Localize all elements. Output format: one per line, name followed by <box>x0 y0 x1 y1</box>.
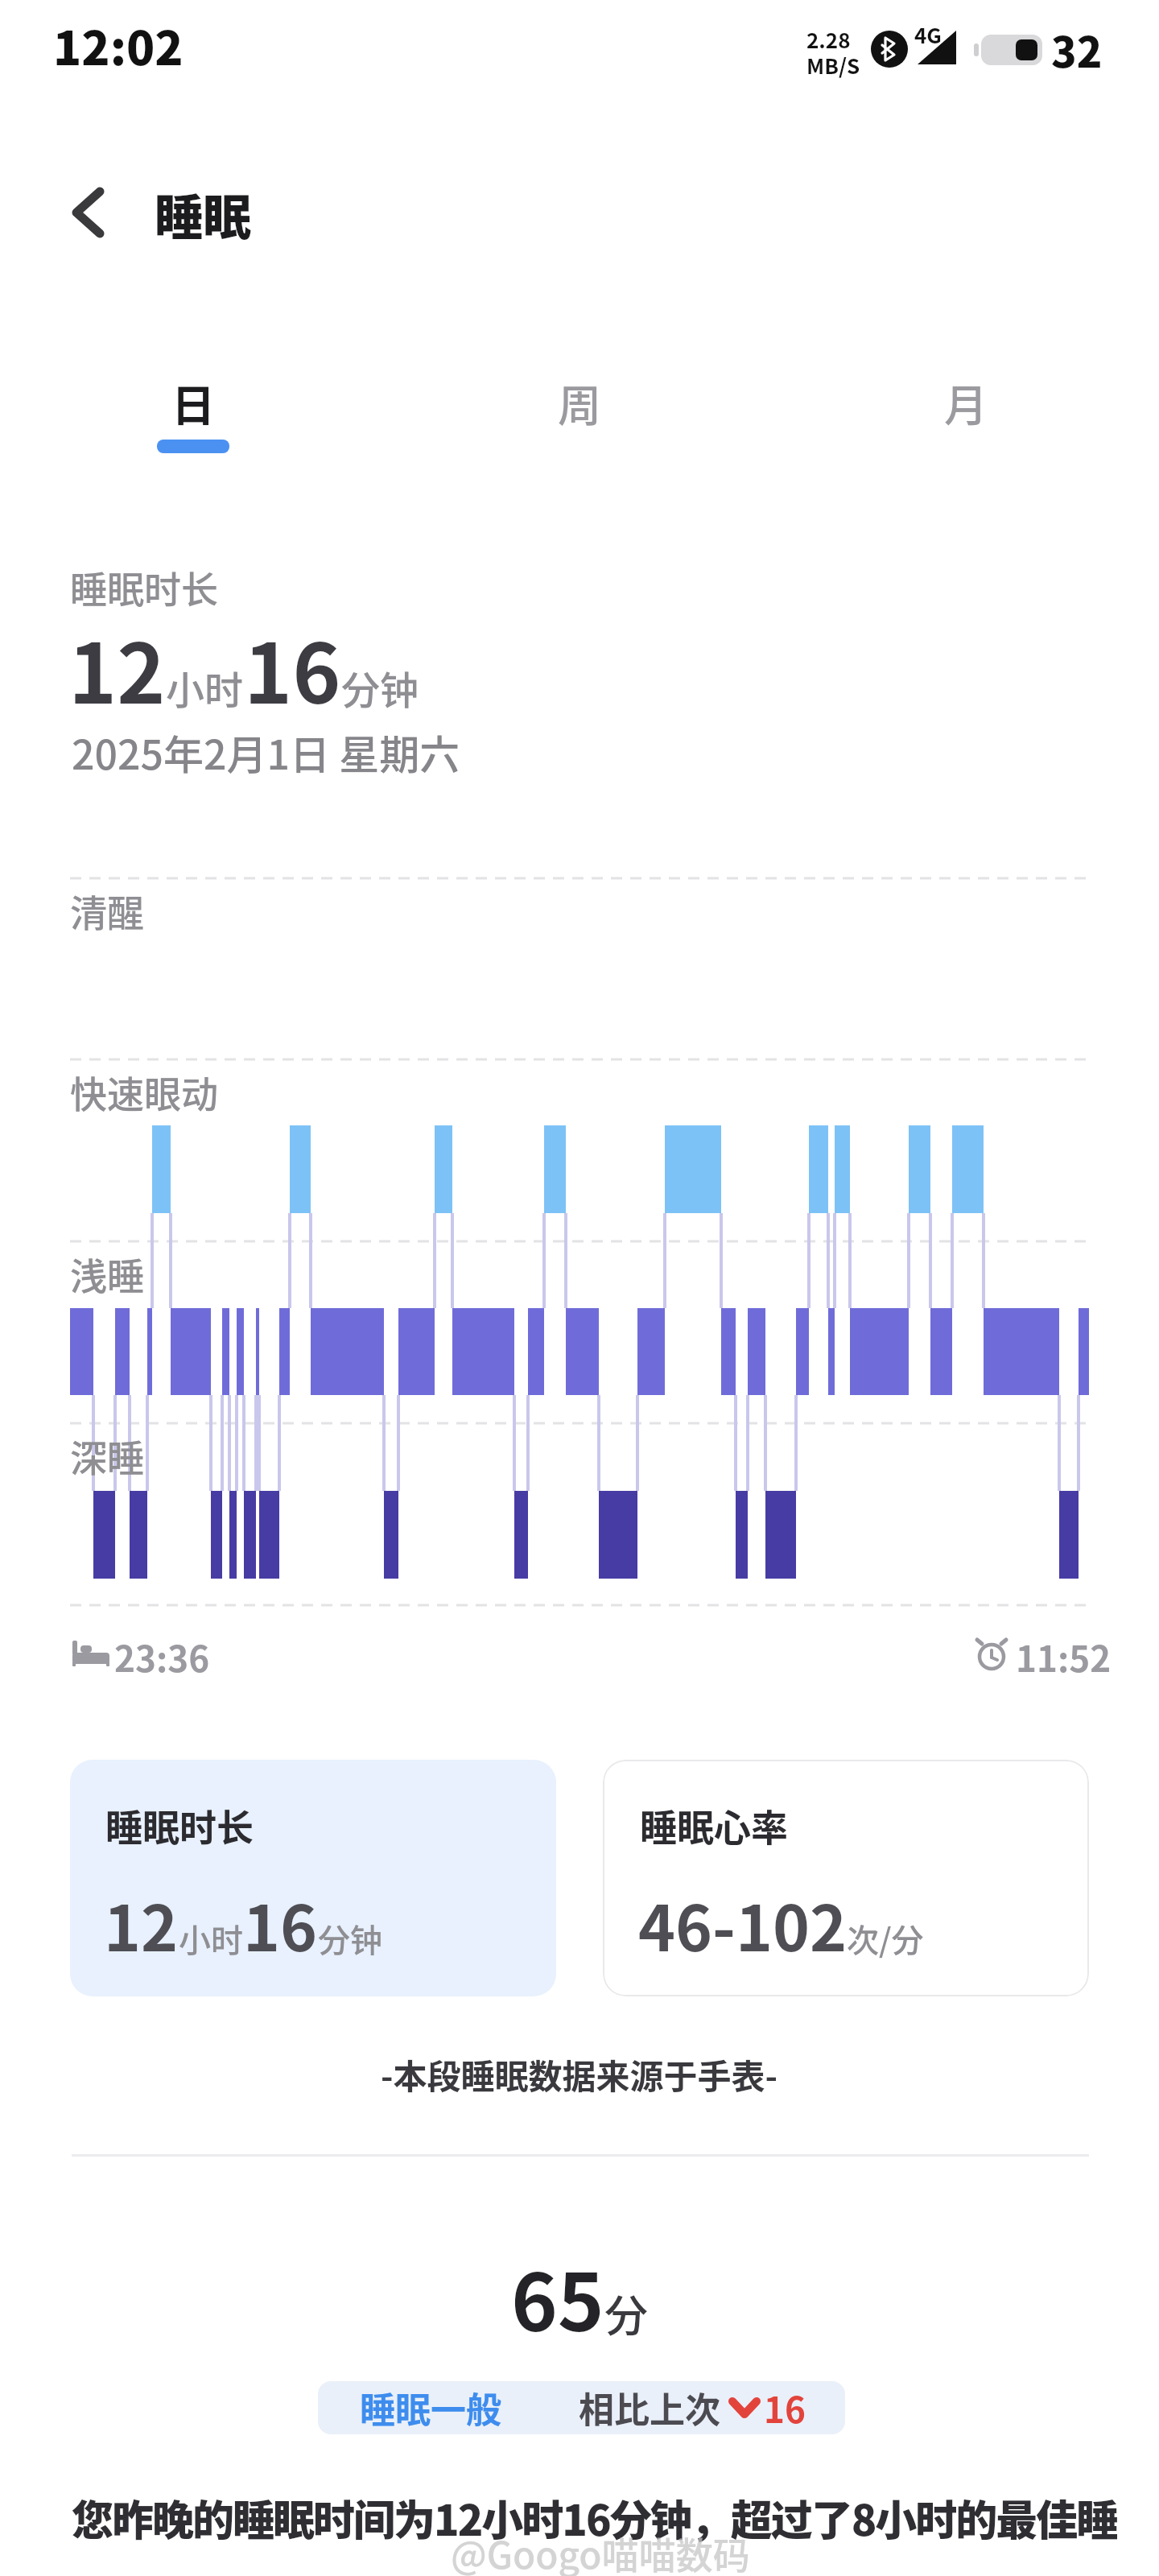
staticText: 周 <box>558 371 601 434</box>
staticText: 小时 <box>179 1915 243 1962</box>
staticText: 快速眼动 <box>70 1065 218 1119</box>
staticText: 睡眠时长 <box>70 560 218 614</box>
staticText: 睡眠时长 <box>105 1798 254 1852</box>
staticText: 16 <box>243 1879 318 1970</box>
staticText: -本段睡眠数据来源于手表- <box>381 2050 778 2099</box>
staticText: 日 <box>171 371 215 434</box>
staticText: 分钟 <box>341 659 419 716</box>
button[interactable]: 睡眠时长 <box>70 1760 556 1996</box>
staticText: 4G <box>914 19 942 50</box>
staticText: 16 <box>244 609 341 728</box>
staticText: 12 <box>68 609 166 728</box>
staticText: 分 <box>604 2281 648 2344</box>
staticText: 次/分 <box>847 1915 924 1962</box>
staticText: 睡眠心率 <box>640 1798 788 1852</box>
staticText: 2.28 <box>806 24 851 55</box>
staticText: 睡眠一般 <box>360 2382 501 2434</box>
staticText: 浅睡 <box>70 1247 144 1301</box>
staticText: MB/S <box>806 50 860 80</box>
staticText: 16 <box>764 2382 806 2434</box>
staticText: 睡眠 <box>155 179 251 249</box>
staticText: 12 <box>104 1879 179 1970</box>
button[interactable]: 周 <box>386 371 773 444</box>
staticText: 12:02 <box>53 11 184 79</box>
staticText: 11:52 <box>1016 1631 1112 1682</box>
staticText: 月 <box>944 371 988 434</box>
staticText: 46-102 <box>638 1879 847 1970</box>
staticText: 清醒 <box>70 884 144 938</box>
staticText: 小时 <box>166 659 244 716</box>
staticText: 23:36 <box>114 1631 210 1682</box>
staticText: 深睡 <box>70 1429 144 1483</box>
button[interactable] <box>48 177 129 250</box>
button[interactable]: 日 <box>0 371 386 444</box>
staticText: @Googo喵喵数码 <box>451 2526 750 2576</box>
staticText: 您昨晚的睡眠时间为12小时16分钟，超过了8小时的最佳睡 <box>72 2487 1159 2548</box>
staticText: 2025年2月1日 星期六 <box>72 723 460 781</box>
staticText: 32 <box>1051 19 1103 80</box>
button[interactable]: 睡眠一般 <box>318 2381 845 2434</box>
button[interactable]: 睡眠心率 <box>603 1760 1089 1996</box>
staticText: 分钟 <box>318 1915 382 1962</box>
button[interactable]: 月 <box>773 371 1159 444</box>
staticText: 65 <box>511 2240 604 2354</box>
staticText: 相比上次 <box>579 2382 720 2434</box>
